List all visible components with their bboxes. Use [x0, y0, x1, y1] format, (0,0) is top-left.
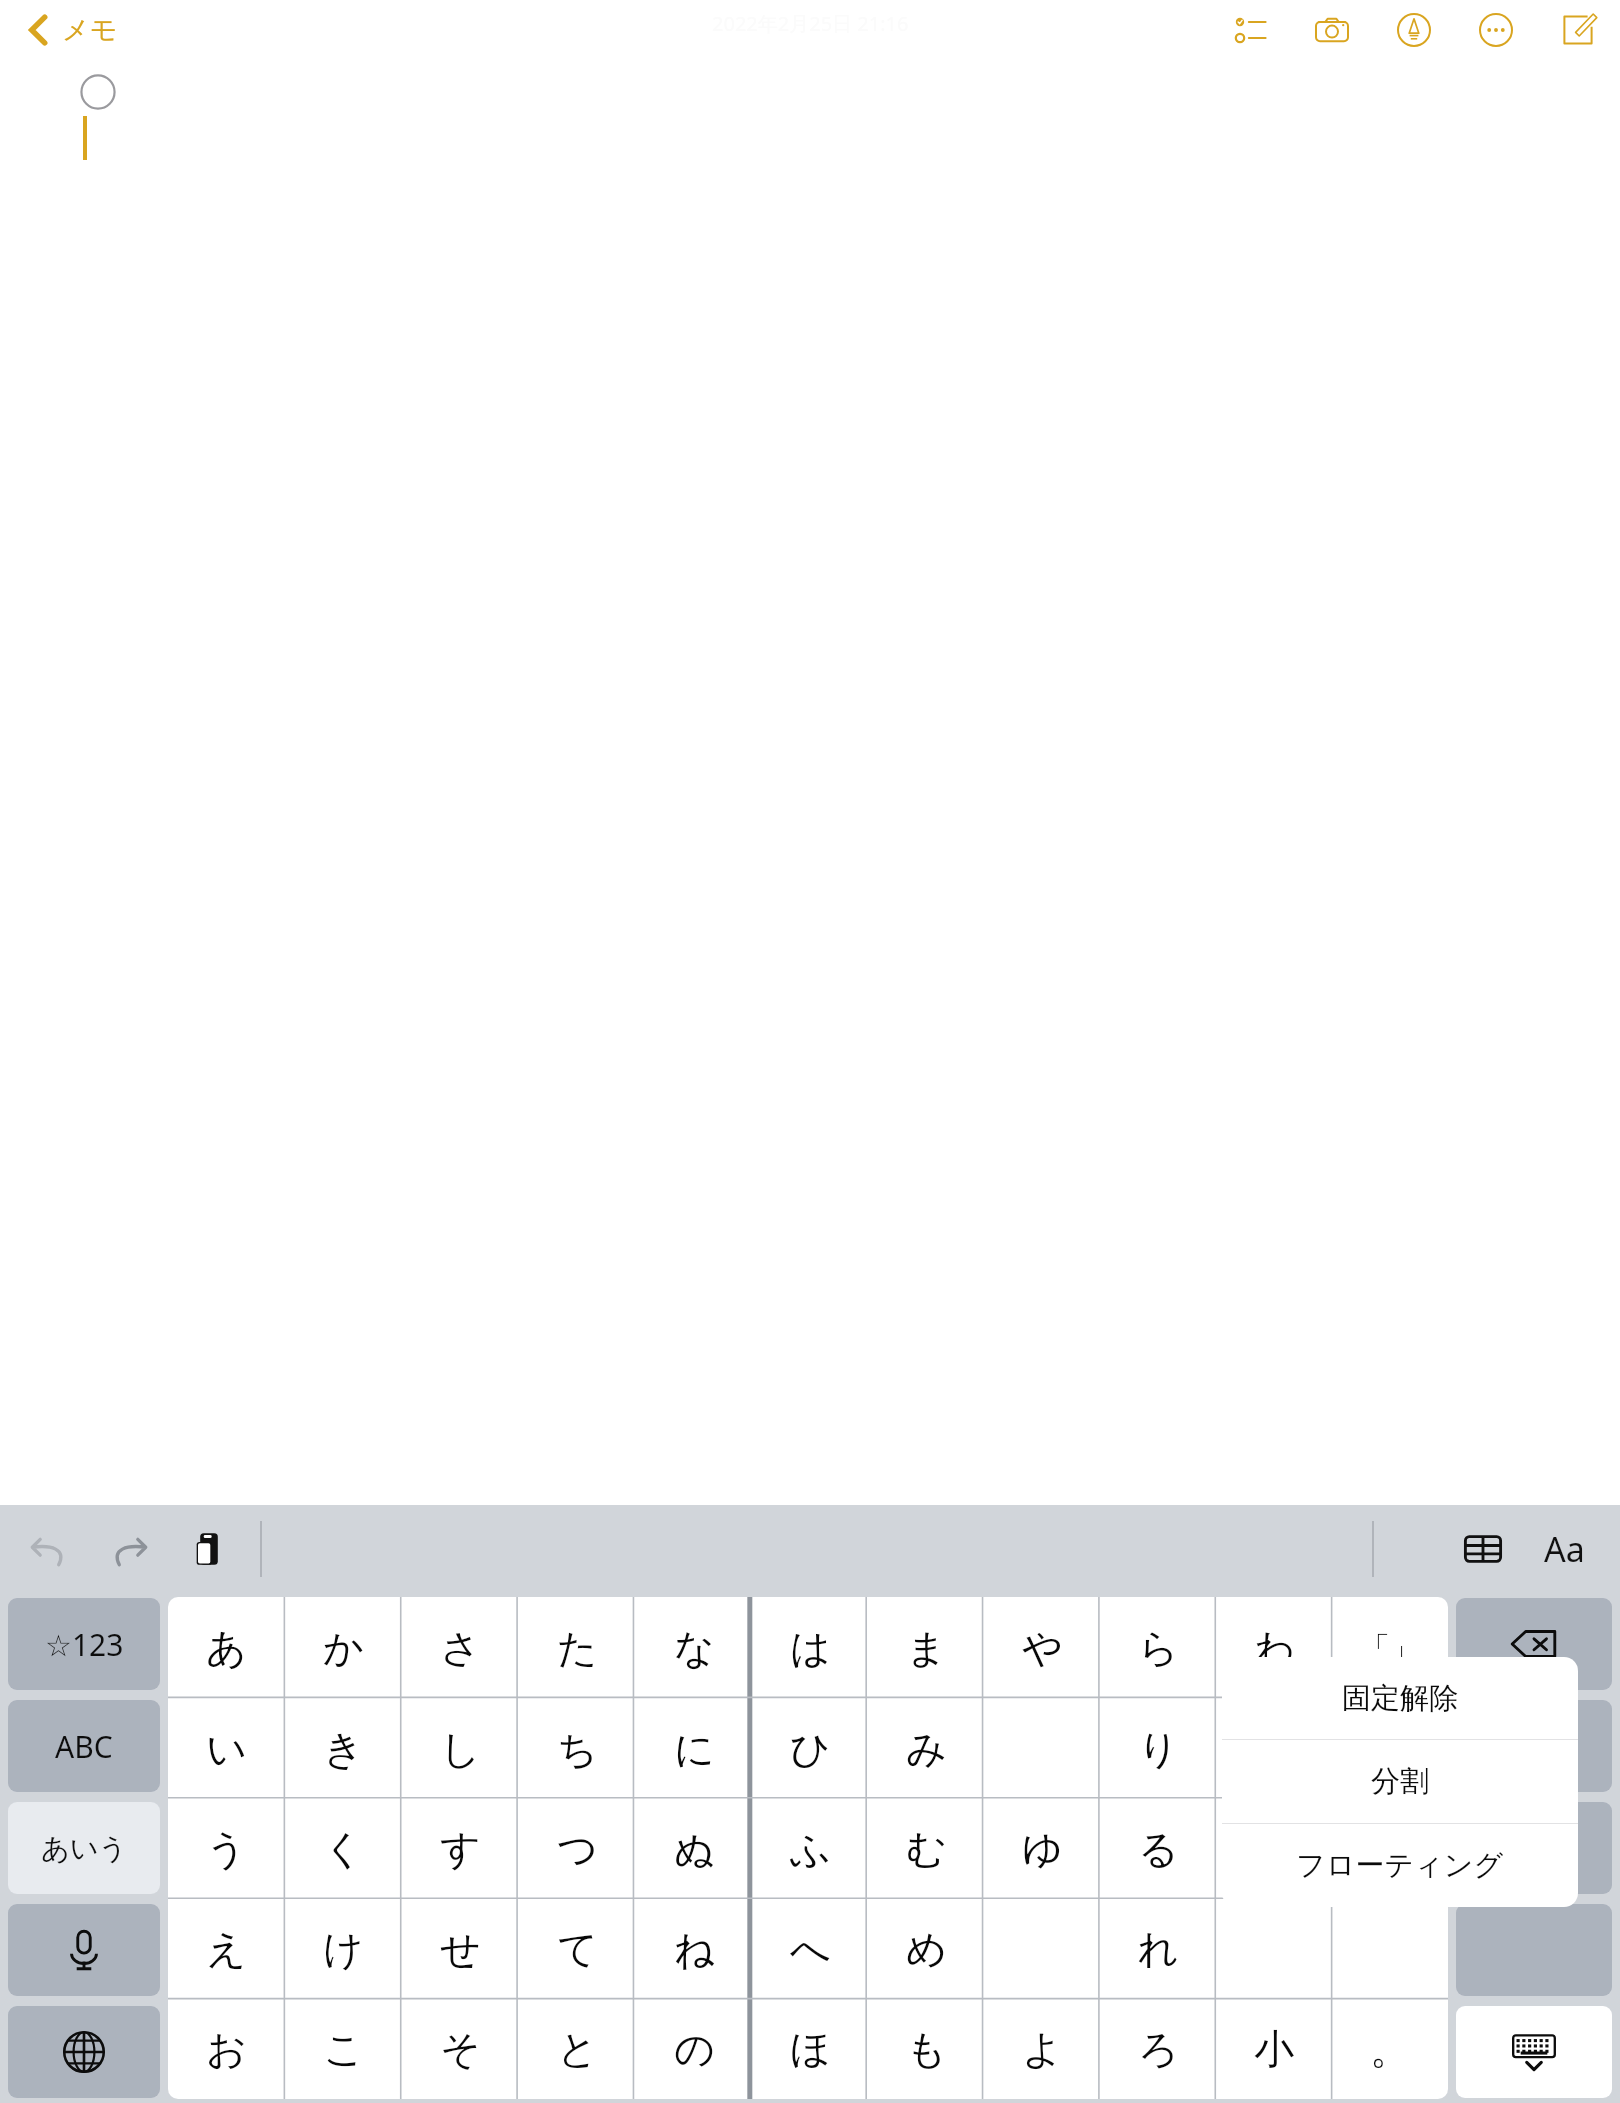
staticText: こ [323, 2024, 364, 2074]
button[interactable]: Delete [1456, 1598, 1612, 1690]
staticText: ぬ [674, 1824, 715, 1874]
button[interactable]: な [636, 1597, 752, 1698]
button[interactable]: Compose [1556, 8, 1600, 52]
button[interactable]: ら [1100, 1597, 1216, 1698]
button[interactable]: れ [1100, 1899, 1216, 1999]
button[interactable]: メモ [26, 13, 118, 47]
staticText: と [557, 2024, 598, 2074]
staticText: フローティング [1296, 1847, 1504, 1884]
button[interactable]: お [168, 1999, 285, 2099]
button[interactable]: も [868, 1999, 984, 2099]
button[interactable] [984, 1899, 1100, 1999]
button[interactable]: Aa [1534, 1519, 1594, 1579]
button[interactable]: ろ [1100, 1999, 1216, 2099]
button[interactable]: Redo [100, 1520, 158, 1578]
button[interactable]: Globe [8, 2006, 160, 2098]
button[interactable]: Checklist [1230, 8, 1274, 52]
button[interactable]: 固定解除 [1222, 1657, 1578, 1739]
staticText: 分割 [1371, 1763, 1429, 1800]
button[interactable]: つ [519, 1799, 636, 1899]
button[interactable]: か [285, 1597, 402, 1698]
button[interactable]: Hide keyboard [1456, 2006, 1612, 2098]
button[interactable]: き [285, 1698, 402, 1799]
button[interactable]: せ [402, 1899, 519, 1999]
staticText: ほ [790, 2024, 831, 2074]
button[interactable]: Markup [1392, 8, 1436, 52]
staticText: み [906, 1724, 947, 1774]
button[interactable]: や [984, 1597, 1100, 1698]
button[interactable]: ABC [8, 1700, 160, 1792]
button[interactable]: く [285, 1799, 402, 1899]
button[interactable]: ☆123 [8, 1598, 160, 1690]
staticText: Aa [1544, 1526, 1585, 1572]
button[interactable]: む [868, 1799, 984, 1899]
button[interactable]: Dictation [8, 1904, 160, 1996]
button[interactable] [1216, 1899, 1332, 1999]
button[interactable]: え [168, 1899, 285, 1999]
button[interactable]: あ [168, 1597, 285, 1698]
button[interactable]: 。 [1332, 1999, 1448, 2099]
button[interactable] [1456, 1802, 1612, 1894]
button[interactable] [1456, 1700, 1612, 1792]
button[interactable]: Paste [180, 1520, 238, 1578]
button[interactable]: ね [636, 1899, 752, 1999]
button[interactable]: へ [752, 1899, 868, 1999]
button[interactable]: あいう [8, 1802, 160, 1894]
button[interactable]: に [636, 1698, 752, 1799]
staticText: 。 [1370, 2024, 1410, 2074]
staticText: む [906, 1824, 947, 1874]
button[interactable]: ち [519, 1698, 636, 1799]
button[interactable]: の [636, 1999, 752, 2099]
button[interactable]: さ [402, 1597, 519, 1698]
button[interactable] [1332, 1799, 1448, 1899]
button[interactable]: は [752, 1597, 868, 1698]
button[interactable]: い [168, 1698, 285, 1799]
button[interactable]: う [168, 1799, 285, 1899]
button[interactable]: 「」 [1332, 1597, 1448, 1698]
staticText: つ [557, 1824, 598, 1874]
button[interactable]: わ [1216, 1597, 1332, 1698]
staticText: ろ [1138, 2024, 1179, 2074]
button[interactable]: ぬ [636, 1799, 752, 1899]
button[interactable]: ゆ [984, 1799, 1100, 1899]
button[interactable]: ほ [752, 1999, 868, 2099]
button[interactable] [1332, 1899, 1448, 1999]
button[interactable]: フローティング [1222, 1824, 1578, 1907]
button[interactable]: Undo [20, 1520, 78, 1578]
button[interactable]: て [519, 1899, 636, 1999]
button[interactable]: す [402, 1799, 519, 1899]
button[interactable]: し [402, 1698, 519, 1799]
button[interactable]: け [285, 1899, 402, 1999]
button[interactable]: Camera [1310, 8, 1354, 52]
staticText: ふ [790, 1824, 831, 1874]
button[interactable]: と [519, 1999, 636, 2099]
button[interactable] [1216, 1698, 1332, 1799]
button[interactable]: め [868, 1899, 984, 1999]
button[interactable]: 小 [1216, 1999, 1332, 2099]
button[interactable]: よ [984, 1999, 1100, 2099]
staticText: ゆ [1022, 1824, 1063, 1874]
button[interactable]: ま [868, 1597, 984, 1698]
button[interactable]: り [1100, 1698, 1216, 1799]
staticText: あいう [41, 1831, 127, 1866]
button[interactable] [1456, 1904, 1612, 1996]
staticText: し [440, 1724, 481, 1774]
staticText: か [323, 1623, 364, 1673]
button[interactable]: ふ [752, 1799, 868, 1899]
button[interactable] [1332, 1698, 1448, 1799]
button[interactable] [1216, 1799, 1332, 1899]
button[interactable]: た [519, 1597, 636, 1698]
button[interactable] [984, 1698, 1100, 1799]
button[interactable]: More [1474, 8, 1518, 52]
button[interactable]: る [1100, 1799, 1216, 1899]
button[interactable]: そ [402, 1999, 519, 2099]
button[interactable]: こ [285, 1999, 402, 2099]
button[interactable]: み [868, 1698, 984, 1799]
button[interactable]: Table [1454, 1520, 1512, 1578]
staticText: そ [440, 2024, 481, 2074]
staticText: ☆123 [45, 1624, 124, 1665]
staticText: お [206, 2024, 247, 2074]
button[interactable]: 分割 [1222, 1740, 1578, 1823]
button[interactable]: ひ [752, 1698, 868, 1799]
